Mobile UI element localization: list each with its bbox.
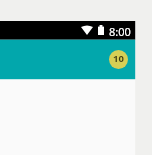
staticText: 8:00 <box>109 24 131 39</box>
staticText: 10 <box>113 52 124 65</box>
button[interactable]: 10 notifications <box>109 50 128 69</box>
other: Battery full <box>98 25 104 35</box>
other: Wi-Fi signal <box>81 25 93 35</box>
